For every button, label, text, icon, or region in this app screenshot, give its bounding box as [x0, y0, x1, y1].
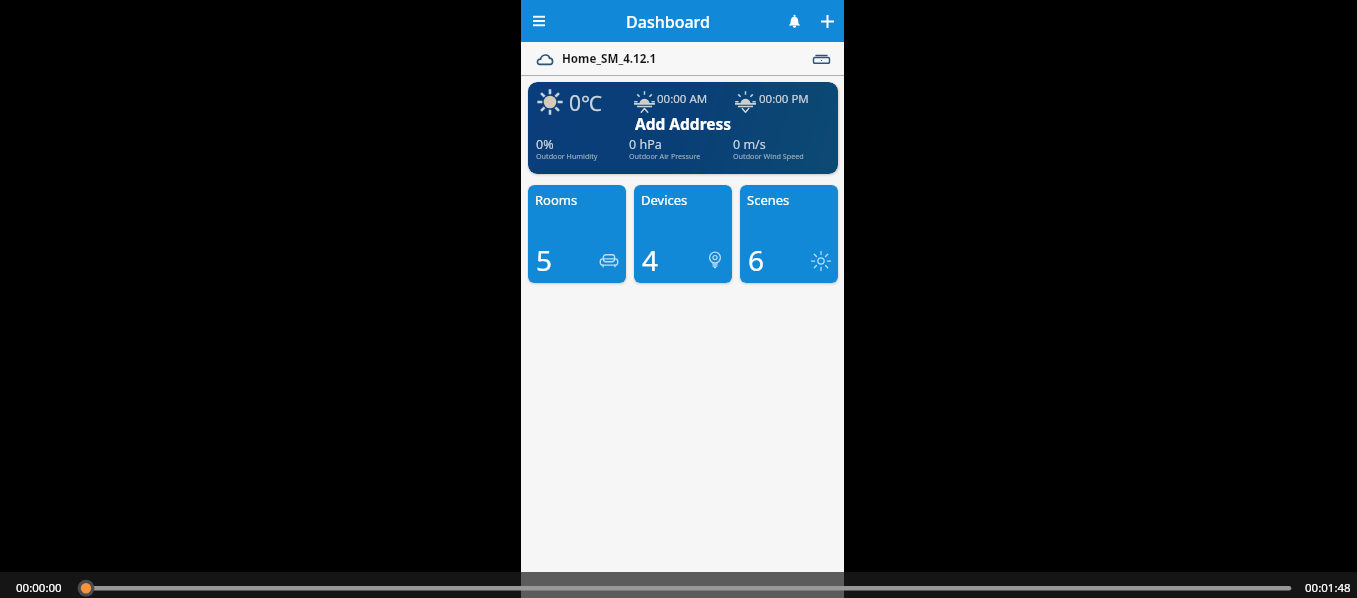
button[interactable]: 0℃	[528, 82, 838, 174]
button[interactable]: Notifications	[779, 6, 809, 36]
staticText: 0 m/s	[733, 136, 766, 153]
staticText: Add Address	[635, 113, 732, 134]
staticText: 4	[642, 241, 659, 279]
staticText: Outdoor Humidity	[536, 151, 598, 161]
staticText: Outdoor Wind Speed	[733, 151, 804, 161]
button[interactable]: Home_SM_4.12.1	[521, 42, 844, 75]
staticText: 0%	[536, 136, 554, 153]
button[interactable]: Add	[812, 6, 842, 36]
button[interactable]: Scenes	[740, 185, 838, 283]
staticText: 0 hPa	[629, 136, 662, 153]
staticText: Devices	[641, 191, 688, 209]
staticText: Dashboard	[625, 11, 711, 33]
staticText: Rooms	[535, 191, 578, 209]
staticText: 0℃	[569, 89, 602, 118]
staticText: 00:00 PM	[759, 91, 809, 107]
staticText: 00:00:00	[16, 580, 62, 596]
button[interactable]: Menu	[523, 5, 555, 37]
staticText: Home_SM_4.12.1	[562, 51, 657, 67]
button[interactable]: Rooms	[528, 185, 626, 283]
staticText: Scenes	[747, 191, 790, 209]
staticText: 6	[748, 241, 765, 279]
staticText: 5	[536, 241, 553, 279]
staticText: Outdoor Air Pressure	[629, 151, 701, 161]
button[interactable]: Devices	[634, 185, 732, 283]
staticText: 00:01:48	[1305, 580, 1351, 596]
button[interactable]: Seek bar	[74, 573, 1300, 597]
staticText: 00:00 AM	[657, 91, 708, 107]
